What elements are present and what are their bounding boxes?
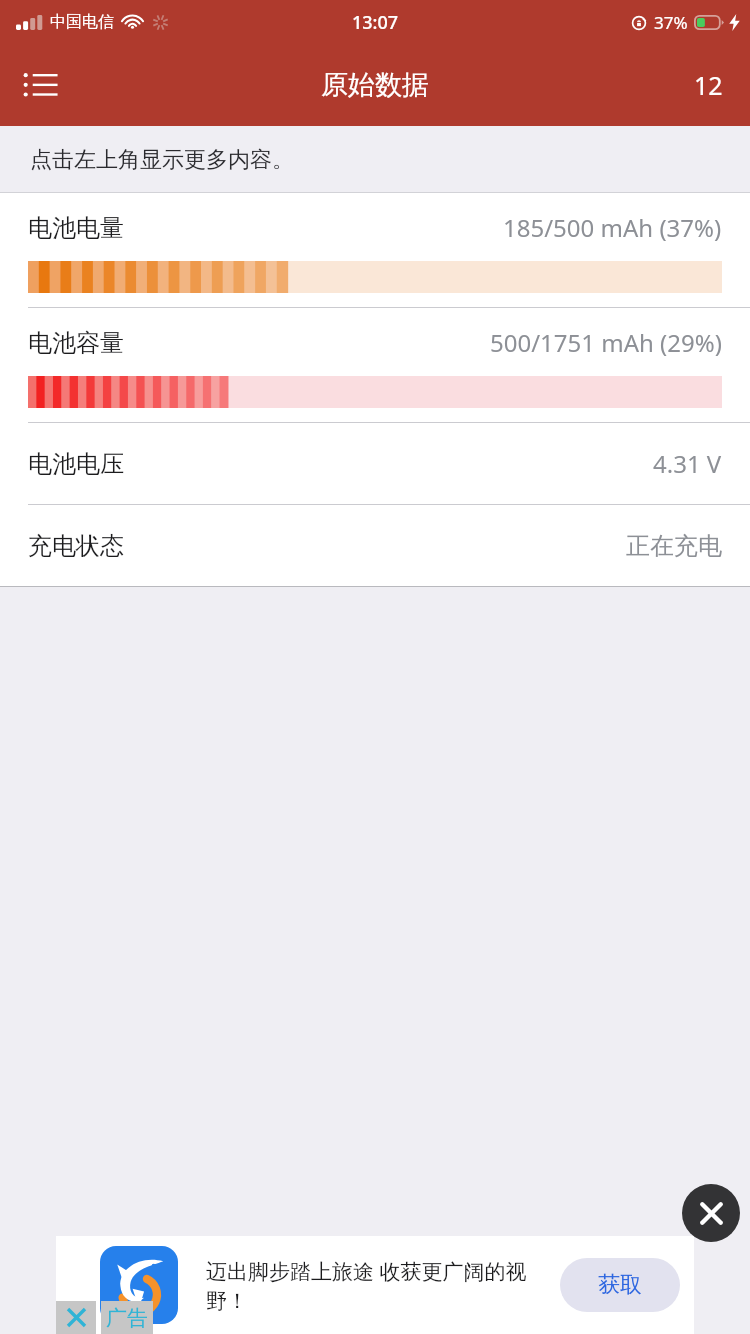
staticText: 12 bbox=[694, 68, 723, 102]
button[interactable]: 获取 bbox=[560, 1258, 680, 1312]
staticText: 185/500 mAh (37%) bbox=[503, 211, 722, 244]
staticText: 迈出脚步踏上旅途 收获更广阔的视野！ bbox=[206, 1257, 560, 1314]
button[interactable]: 电池电压 bbox=[0, 423, 750, 504]
staticText: 正在充电 bbox=[626, 531, 722, 561]
button[interactable]: 充电状态 bbox=[0, 505, 750, 586]
staticText: 500/1751 mAh (29%) bbox=[490, 326, 722, 359]
staticText: 原始数据 bbox=[321, 68, 429, 102]
staticText: 充电状态 bbox=[28, 531, 124, 561]
staticText: 广告 bbox=[106, 1305, 148, 1331]
button[interactable]: Close ad bbox=[682, 1184, 740, 1242]
button[interactable]: Menu bbox=[10, 54, 72, 116]
staticText: 中国电信 bbox=[50, 12, 114, 32]
staticText: 37% bbox=[654, 11, 688, 34]
staticText: 电池电量 bbox=[28, 213, 124, 243]
button[interactable]: 12 bbox=[680, 57, 736, 113]
staticText: 获取 bbox=[598, 1271, 642, 1299]
staticText: 4.31 V bbox=[653, 447, 722, 480]
staticText: 点击左上角显示更多内容。 bbox=[30, 146, 294, 174]
button[interactable]: 电池电量 bbox=[0, 193, 750, 307]
button[interactable]: 电池容量 bbox=[0, 308, 750, 422]
staticText: 电池电压 bbox=[28, 449, 124, 479]
staticText: 13:07 bbox=[352, 10, 399, 35]
staticText: 电池容量 bbox=[28, 328, 124, 358]
button[interactable]: 迈出脚步踏上旅途 收获更广阔的视野！ bbox=[56, 1236, 694, 1334]
button[interactable]: Close bbox=[56, 1301, 96, 1334]
